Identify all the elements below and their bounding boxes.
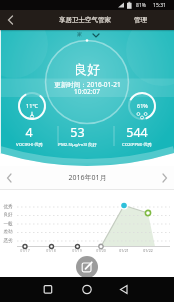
staticText: 01/22 xyxy=(143,248,153,253)
staticText: 01/17 xyxy=(20,248,30,253)
staticText: 11℃ xyxy=(26,102,38,109)
staticText: 01/20 xyxy=(96,248,106,253)
staticText: 10:02:07 xyxy=(74,87,100,96)
staticText: 良好 xyxy=(3,212,13,218)
button[interactable] xyxy=(64,30,104,40)
button[interactable]: 管理 xyxy=(122,10,158,30)
staticText: 4 xyxy=(25,124,33,141)
staticText: 61% xyxy=(137,102,148,109)
button[interactable] xyxy=(0,166,20,190)
staticText: 恶劣 xyxy=(3,238,13,244)
staticText: 良好 xyxy=(74,61,100,77)
staticText: 管理 xyxy=(134,16,147,24)
button[interactable] xyxy=(76,256,98,278)
staticText: 01/18 xyxy=(46,248,56,253)
staticText: 53 xyxy=(70,124,85,141)
button[interactable] xyxy=(36,277,60,302)
button[interactable] xyxy=(154,166,174,190)
staticText: 享居卫士空气管家 xyxy=(59,16,111,24)
staticText: 家 xyxy=(77,31,82,37)
staticText: 一般 xyxy=(3,221,13,227)
staticText: 更新时间：2016-01-21 xyxy=(54,80,121,89)
staticText: 01/19 xyxy=(72,248,82,253)
staticText: CO2(PPM) 优秀 xyxy=(122,141,152,147)
button[interactable] xyxy=(0,10,20,30)
button[interactable] xyxy=(112,277,136,302)
staticText: PM2.5(μg/m3) 良好 xyxy=(58,141,97,147)
staticText: 15:31 xyxy=(153,2,166,9)
staticText: 01/21 xyxy=(119,248,129,253)
staticText: VOC(RH) 优秀 xyxy=(16,141,43,147)
staticText: 差劲 xyxy=(3,229,13,235)
button[interactable] xyxy=(75,277,99,302)
staticText: 544 xyxy=(126,124,148,141)
staticText: 81% xyxy=(136,2,146,9)
staticText: 优秀 xyxy=(3,204,13,210)
staticText: 2016年01月 xyxy=(68,173,107,183)
